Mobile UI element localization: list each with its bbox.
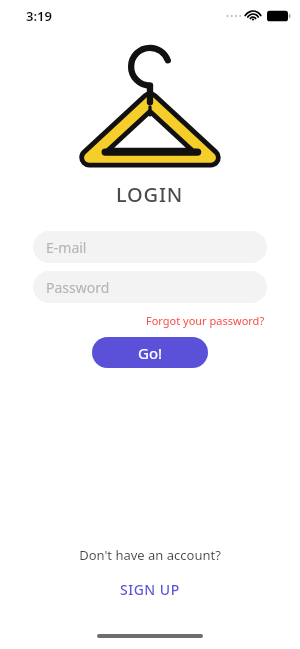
button[interactable]: Password [33,271,267,303]
staticText: 3:19 [26,7,52,25]
staticText: SIGN UP [120,580,180,599]
other: App logo [80,55,220,175]
staticText: E-mail [46,238,87,257]
button[interactable]: SIGN UP [110,577,190,602]
staticText: Forgot your password? [146,313,265,328]
staticText: LOGIN [116,181,184,208]
button[interactable]: Go! [92,337,208,368]
staticText: Don't have an account? [79,546,221,564]
button[interactable]: Forgot your password? [144,311,267,330]
staticText: Password [46,278,110,297]
button[interactable]: E-mail [33,231,267,263]
staticText: Go! [138,343,163,363]
